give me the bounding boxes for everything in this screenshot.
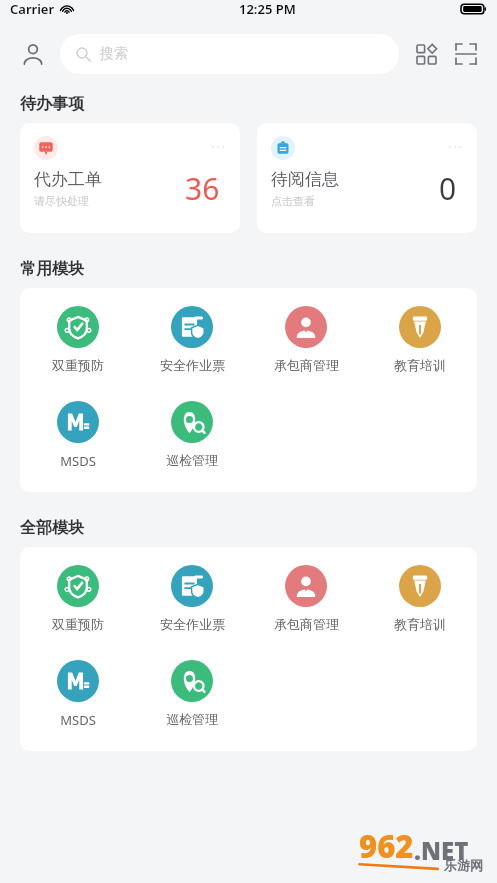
- staticText: 待办事项: [20, 94, 84, 114]
- staticText: 承包商管理: [274, 616, 339, 632]
- staticText: 巡检管理: [166, 711, 218, 727]
- staticText: 教育培训: [394, 357, 446, 373]
- button[interactable]: 双重预防: [20, 565, 135, 632]
- staticText: .NET: [414, 834, 469, 867]
- button[interactable]: 待阅信息: [257, 123, 477, 233]
- button[interactable]: 搜索: [60, 34, 399, 74]
- button[interactable]: 安全作业票: [135, 565, 249, 632]
- button[interactable]: 教育培训: [363, 565, 477, 632]
- staticText: 36: [185, 168, 220, 209]
- staticText: 待阅信息: [271, 169, 339, 190]
- button[interactable]: 教育培训: [363, 306, 477, 373]
- staticText: 安全作业票: [160, 357, 225, 373]
- staticText: 0: [439, 168, 457, 209]
- button[interactable]: 巡检管理: [135, 660, 249, 727]
- button[interactable]: Apps: [411, 39, 441, 69]
- staticText: MSDS: [60, 452, 96, 470]
- staticText: 请尽快处理: [34, 194, 89, 208]
- staticText: 点击查看: [271, 194, 315, 208]
- staticText: 搜索: [100, 45, 128, 63]
- staticText: 962: [359, 825, 414, 867]
- button[interactable]: MSDS: [20, 660, 135, 729]
- staticText: 代办工单: [34, 169, 102, 190]
- staticText: 双重预防: [52, 616, 104, 632]
- button[interactable]: 巡检管理: [135, 401, 249, 468]
- button[interactable]: 双重预防: [20, 306, 135, 373]
- staticText: 乐游网: [444, 857, 483, 873]
- button[interactable]: 承包商管理: [249, 565, 363, 632]
- staticText: 承包商管理: [274, 357, 339, 373]
- button[interactable]: 承包商管理: [249, 306, 363, 373]
- staticText: 常用模块: [20, 259, 84, 279]
- button[interactable]: Scan: [451, 39, 481, 69]
- staticText: 12:25 PM: [239, 0, 296, 18]
- button[interactable]: 安全作业票: [135, 306, 249, 373]
- staticText: 全部模块: [20, 518, 84, 538]
- staticText: Carrier: [10, 0, 55, 18]
- button[interactable]: Profile: [16, 37, 50, 71]
- staticText: 双重预防: [52, 357, 104, 373]
- button[interactable]: MSDS: [20, 401, 135, 470]
- staticText: 教育培训: [394, 616, 446, 632]
- staticText: MSDS: [60, 711, 96, 729]
- button[interactable]: 代办工单: [20, 123, 240, 233]
- staticText: 巡检管理: [166, 452, 218, 468]
- staticText: 安全作业票: [160, 616, 225, 632]
